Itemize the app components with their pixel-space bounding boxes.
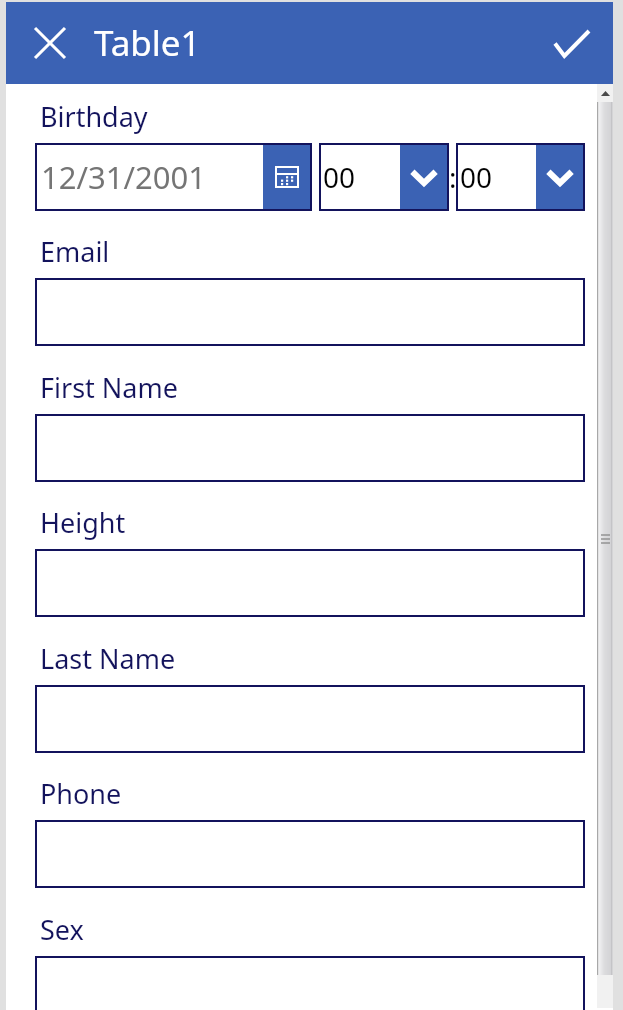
button[interactable]: Select minute (536, 145, 583, 209)
staticText: 00 (460, 158, 493, 196)
button[interactable]: 00 (319, 143, 449, 211)
staticText: Table1 (94, 19, 201, 67)
staticText: Sex (40, 911, 84, 948)
button[interactable]: Done (546, 17, 598, 69)
staticText: First Name (40, 369, 178, 406)
button[interactable]: Scroll up (597, 84, 613, 102)
staticText: Phone (40, 775, 122, 812)
button[interactable]: Close (25, 18, 75, 68)
button[interactable]: 00 (456, 143, 585, 211)
button[interactable] (35, 820, 585, 888)
staticText: Email (40, 233, 110, 270)
staticText: 00 (323, 158, 356, 196)
staticText: Birthday (40, 98, 148, 135)
staticText: 12/31/2001 (41, 156, 206, 198)
button[interactable] (35, 956, 585, 1010)
button[interactable] (35, 685, 585, 753)
button[interactable]: Pick date (263, 145, 310, 209)
button[interactable]: Scroll position (597, 102, 613, 975)
button[interactable]: 12/31/2001 (35, 143, 312, 211)
button[interactable] (35, 414, 585, 482)
button[interactable]: Select hour (400, 145, 447, 209)
button[interactable] (35, 278, 585, 346)
staticText: Height (40, 504, 126, 541)
staticText: Last Name (40, 640, 176, 677)
button[interactable] (35, 549, 585, 617)
staticText: : (449, 158, 456, 196)
